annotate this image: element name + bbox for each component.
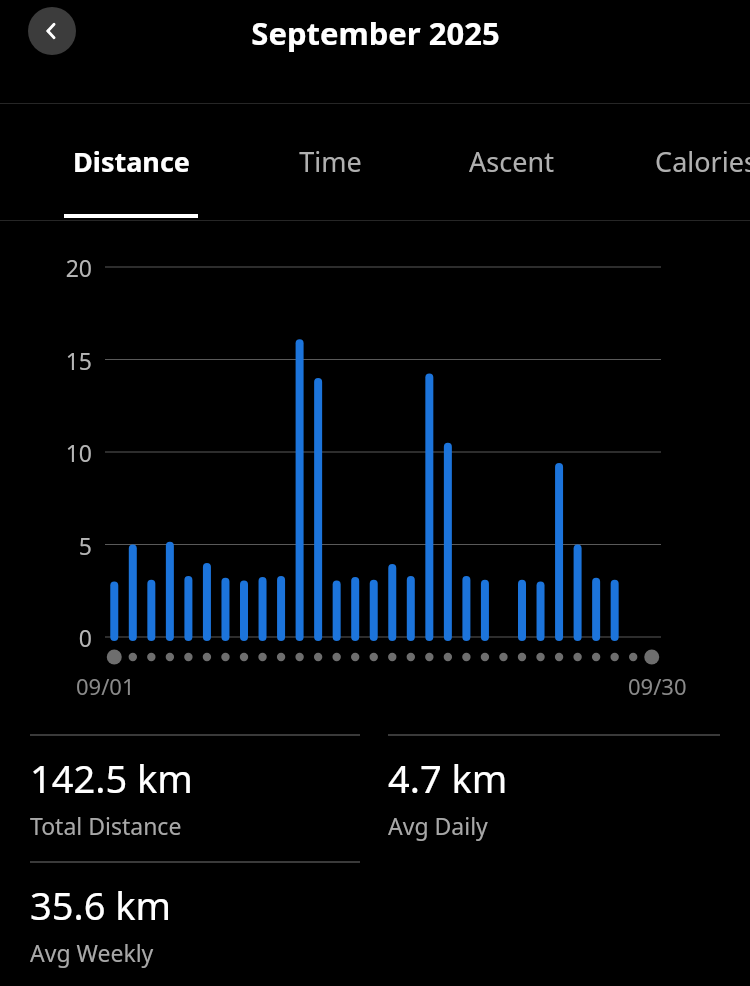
staticText: 09/01 bbox=[76, 671, 135, 701]
staticText: Distance bbox=[73, 143, 190, 180]
staticText: Calories bbox=[655, 143, 750, 180]
staticText: Time bbox=[299, 143, 362, 180]
button[interactable]: Calories bbox=[614, 104, 750, 218]
staticText: September 2025 bbox=[251, 12, 500, 54]
staticText: 09/30 bbox=[628, 671, 687, 701]
button[interactable]: 142.5 km bbox=[30, 734, 360, 841]
staticText: 20 bbox=[65, 252, 92, 283]
button[interactable]: 4.7 km bbox=[388, 734, 720, 841]
button[interactable]: Time bbox=[238, 104, 422, 218]
staticText: Ascent bbox=[469, 143, 554, 180]
staticText: 142.5 km bbox=[30, 752, 193, 804]
staticText: Total Distance bbox=[30, 810, 182, 841]
staticText: 4.7 km bbox=[388, 752, 508, 804]
button[interactable]: 35.6 km bbox=[30, 861, 360, 968]
button[interactable]: Back bbox=[28, 7, 76, 55]
staticText: Avg Weekly bbox=[30, 937, 154, 968]
staticText: 10 bbox=[65, 437, 92, 468]
button[interactable]: Distance bbox=[39, 104, 223, 218]
button[interactable]: Ascent bbox=[419, 104, 603, 218]
staticText: 15 bbox=[65, 345, 92, 376]
staticText: 5 bbox=[78, 530, 92, 561]
staticText: Avg Daily bbox=[388, 810, 488, 841]
staticText: 35.6 km bbox=[30, 879, 172, 931]
staticText: 0 bbox=[78, 622, 92, 653]
